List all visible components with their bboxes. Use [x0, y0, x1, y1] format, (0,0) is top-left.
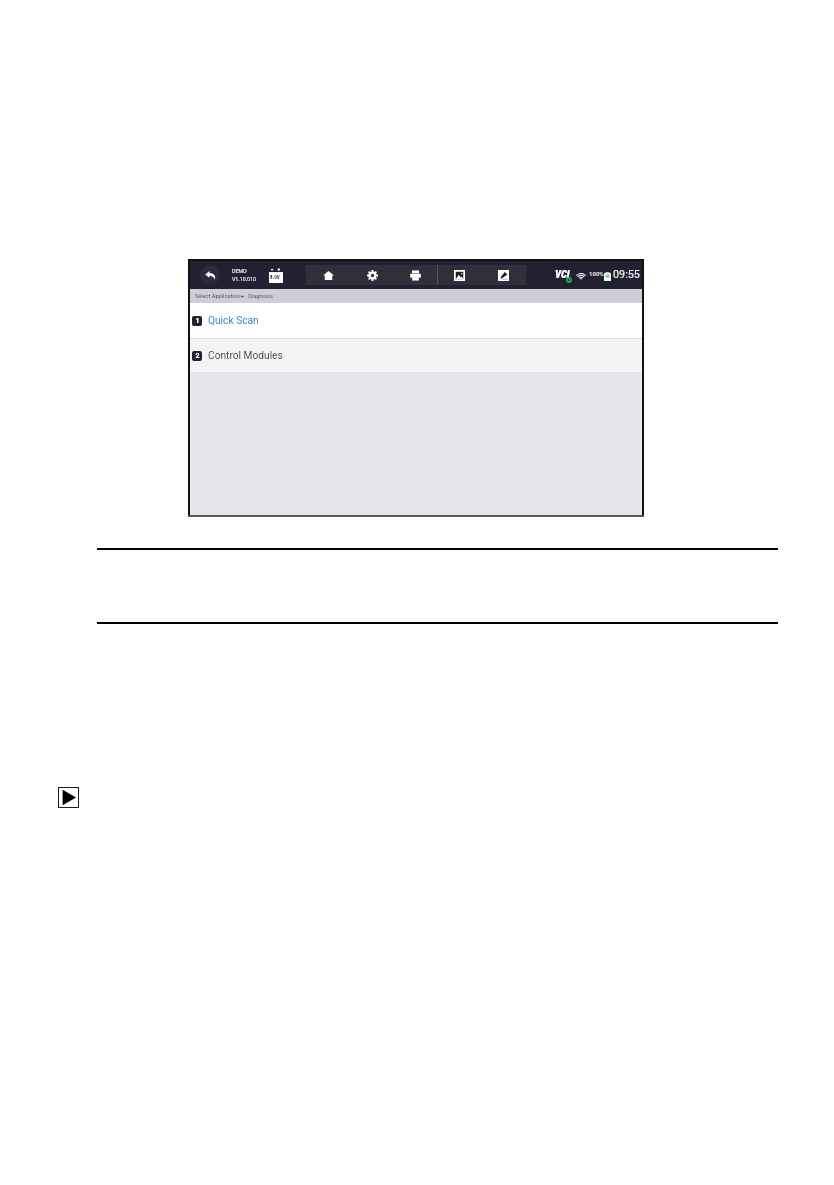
staticText: 1	[195, 317, 200, 325]
button[interactable]: 1	[190, 303, 642, 339]
button[interactable]: Screenshot	[438, 265, 481, 285]
button[interactable]: Record	[481, 265, 525, 285]
staticText: Control Modules	[208, 350, 283, 362]
button[interactable]: Settings	[350, 265, 394, 285]
staticText: DEMO	[232, 268, 247, 274]
staticText: 2	[195, 352, 200, 360]
button[interactable]: 2	[190, 339, 642, 373]
staticText: 100%	[589, 270, 604, 277]
staticText: 8.0V	[270, 274, 280, 280]
button[interactable]: Print	[394, 265, 437, 285]
button[interactable]: Back	[200, 265, 220, 285]
staticText: V1.10.010	[232, 276, 257, 282]
button[interactable]: Play	[58, 787, 79, 808]
staticText: Quick Scan	[208, 315, 259, 327]
staticText: VCI	[555, 268, 570, 280]
staticText: Select Application ▸ Diagnosis	[195, 293, 273, 300]
staticText: 09:55	[613, 268, 640, 281]
button[interactable]: Home	[306, 265, 350, 285]
